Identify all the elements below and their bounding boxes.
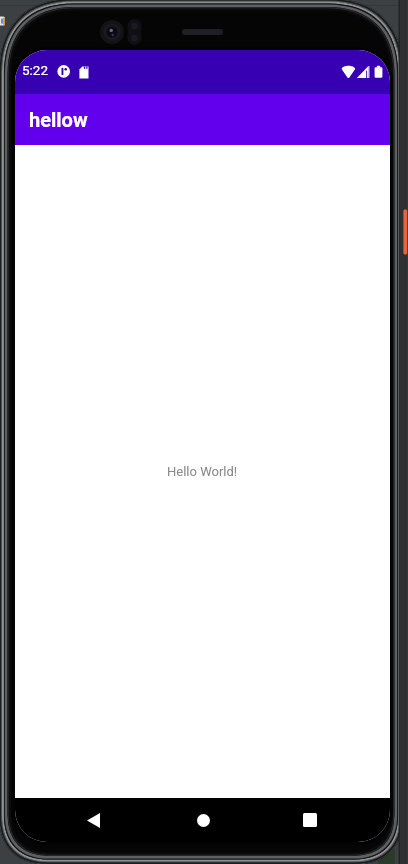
button[interactable]: Home — [181, 798, 225, 842]
staticText: Hello World! — [167, 464, 238, 479]
staticText: 5:22 — [22, 62, 49, 78]
button[interactable]: Recent apps — [288, 798, 332, 842]
button[interactable]: Back — [71, 798, 115, 842]
button[interactable]: hellow — [15, 94, 390, 145]
staticText: hellow — [29, 108, 88, 131]
